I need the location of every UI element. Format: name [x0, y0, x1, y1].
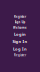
staticText: Register	[14, 15, 26, 18]
staticText: Login	[14, 32, 26, 37]
staticText: Sign In	[12, 39, 27, 44]
staticText: Welcome	[13, 26, 27, 29]
staticText: Register	[14, 53, 26, 57]
staticText: Sign Up	[14, 20, 25, 24]
staticText: Log In	[13, 46, 27, 51]
